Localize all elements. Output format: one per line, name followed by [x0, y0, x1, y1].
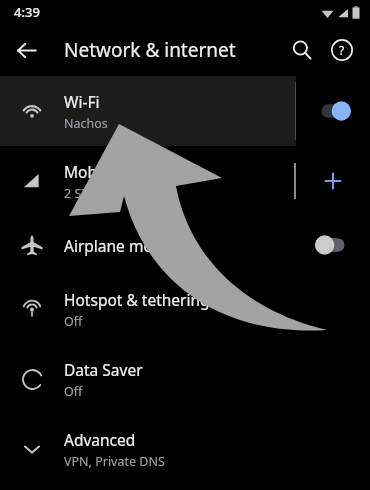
- button[interactable]: Search: [282, 30, 322, 70]
- staticText: Data Saver: [64, 359, 143, 380]
- staticText: 4:39: [14, 3, 40, 21]
- button[interactable]: Back: [6, 30, 46, 70]
- button[interactable]: Add network: [296, 146, 370, 216]
- staticText: ?: [339, 42, 345, 58]
- staticText: Wi-Fi: [64, 91, 100, 112]
- staticText: Nachos: [64, 115, 108, 132]
- button[interactable]: Mobile network: [0, 146, 370, 216]
- button[interactable]: Data Saver: [0, 344, 370, 414]
- staticText: VPN, Private DNS: [64, 453, 165, 470]
- button[interactable]: Wi-Fi toggle, on: [296, 76, 370, 146]
- staticText: Advanced: [64, 429, 136, 450]
- button[interactable]: Airplane mode: [0, 216, 370, 274]
- staticText: Hotspot & tethering: [64, 289, 210, 310]
- staticText: 2 SIMs: [64, 185, 103, 202]
- staticText: Network & internet: [64, 37, 236, 63]
- button[interactable]: Advanced: [0, 414, 370, 484]
- staticText: Off: [64, 313, 83, 330]
- button[interactable]: Airplane mode toggle, off: [296, 216, 370, 274]
- staticText: Airplane mode: [64, 235, 172, 256]
- button[interactable]: Hotspot & tethering: [0, 274, 370, 344]
- staticText: Mobile network: [64, 161, 178, 182]
- button[interactable]: Wi-Fi: [0, 76, 370, 146]
- staticText: Off: [64, 383, 83, 400]
- button[interactable]: Help: [322, 30, 362, 70]
